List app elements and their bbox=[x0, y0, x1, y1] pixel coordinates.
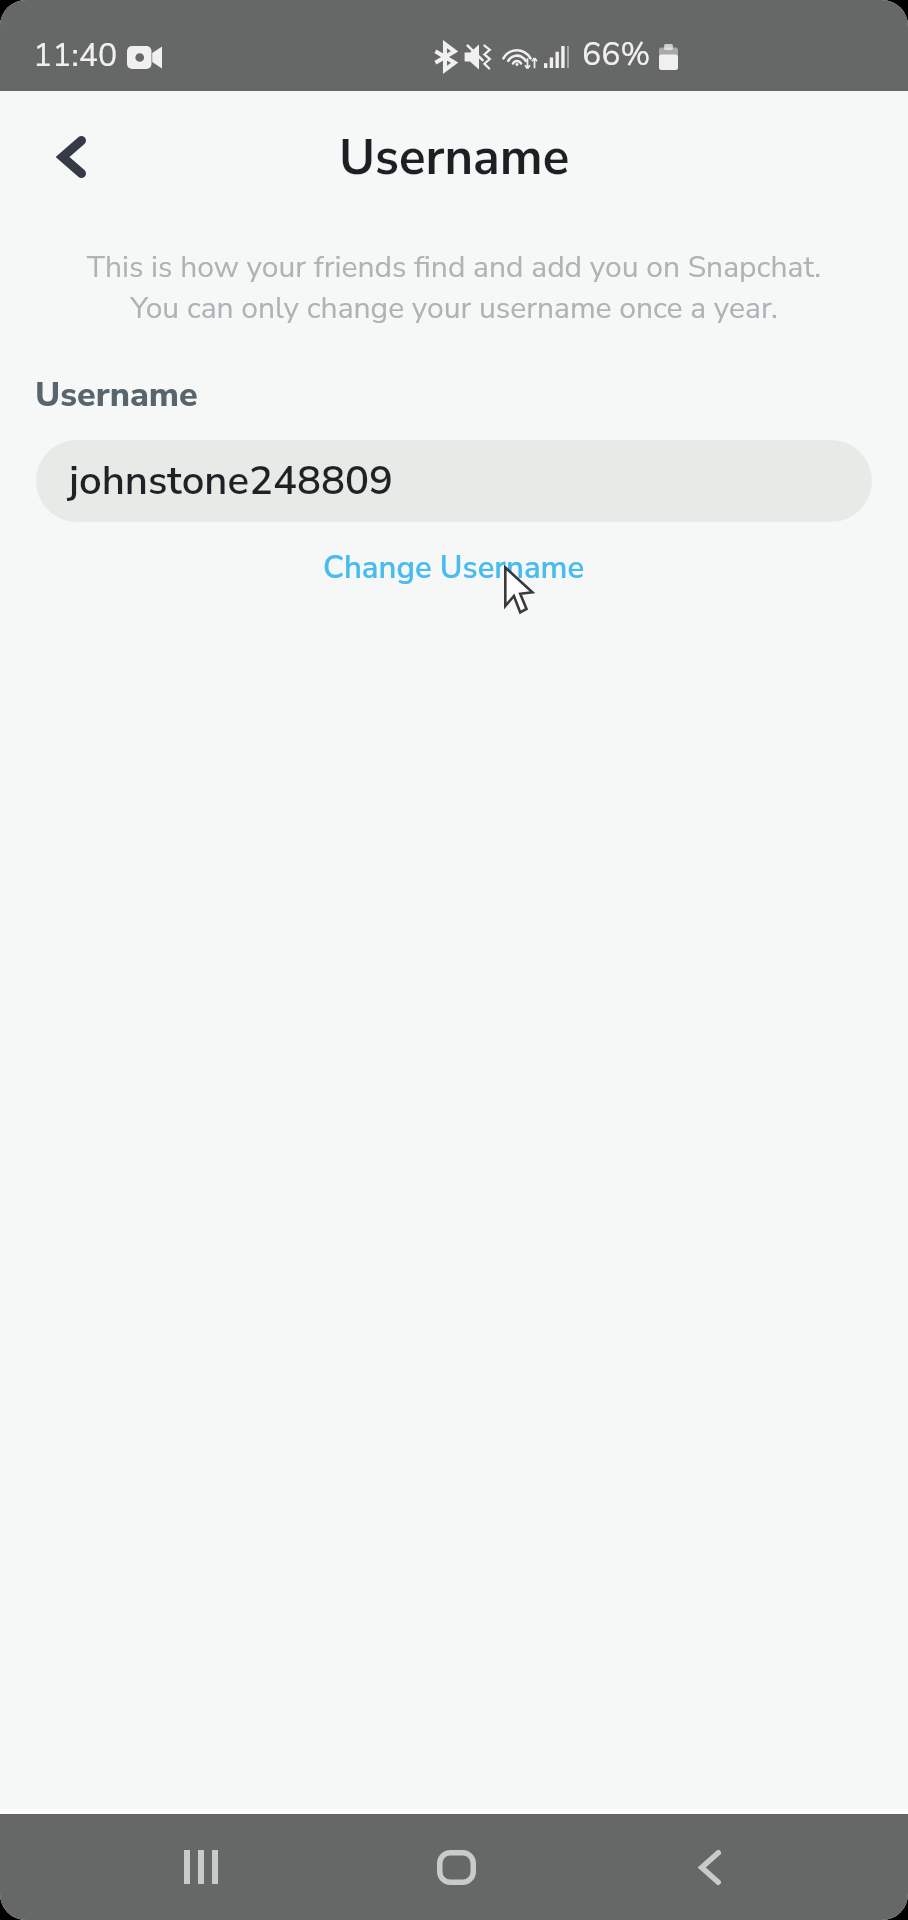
button[interactable]: Recent apps bbox=[148, 1814, 254, 1920]
button[interactable]: Back bbox=[657, 1814, 763, 1920]
staticText: This is how your friends find and add yo… bbox=[0, 247, 908, 329]
staticText: Change Username bbox=[323, 547, 585, 589]
button[interactable]: Change Username bbox=[303, 537, 605, 599]
button[interactable]: Home bbox=[403, 1814, 509, 1920]
staticText: 66% bbox=[582, 33, 651, 77]
staticText: johnstone248809 bbox=[69, 454, 393, 509]
staticText: Username bbox=[339, 124, 570, 191]
staticText: Username bbox=[35, 372, 198, 418]
staticText: 11:40 bbox=[33, 34, 118, 78]
button[interactable]: johnstone248809 bbox=[36, 440, 872, 522]
button[interactable]: Back bbox=[20, 114, 124, 200]
